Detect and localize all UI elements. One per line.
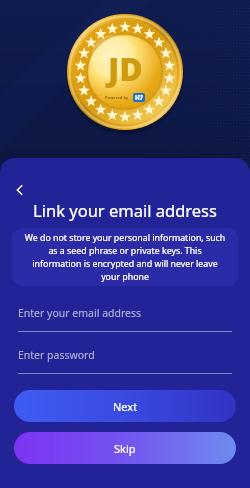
button[interactable]: Enter your email address [18,306,232,332]
button[interactable]: Back [6,176,34,204]
staticText: H7 [135,94,144,102]
button[interactable]: Skip [14,432,236,464]
staticText: Enter password [18,348,95,362]
staticText: JD [108,47,143,91]
staticText: Powered by [105,95,129,100]
staticText: Skip [114,441,136,456]
button[interactable]: Next [14,390,236,422]
staticText: We do not store your personal informatio… [24,232,226,282]
button[interactable]: Enter password [18,348,232,374]
staticText: Next [113,399,138,414]
staticText: Enter your email address [18,306,142,320]
staticText: Link your email address [33,199,217,221]
